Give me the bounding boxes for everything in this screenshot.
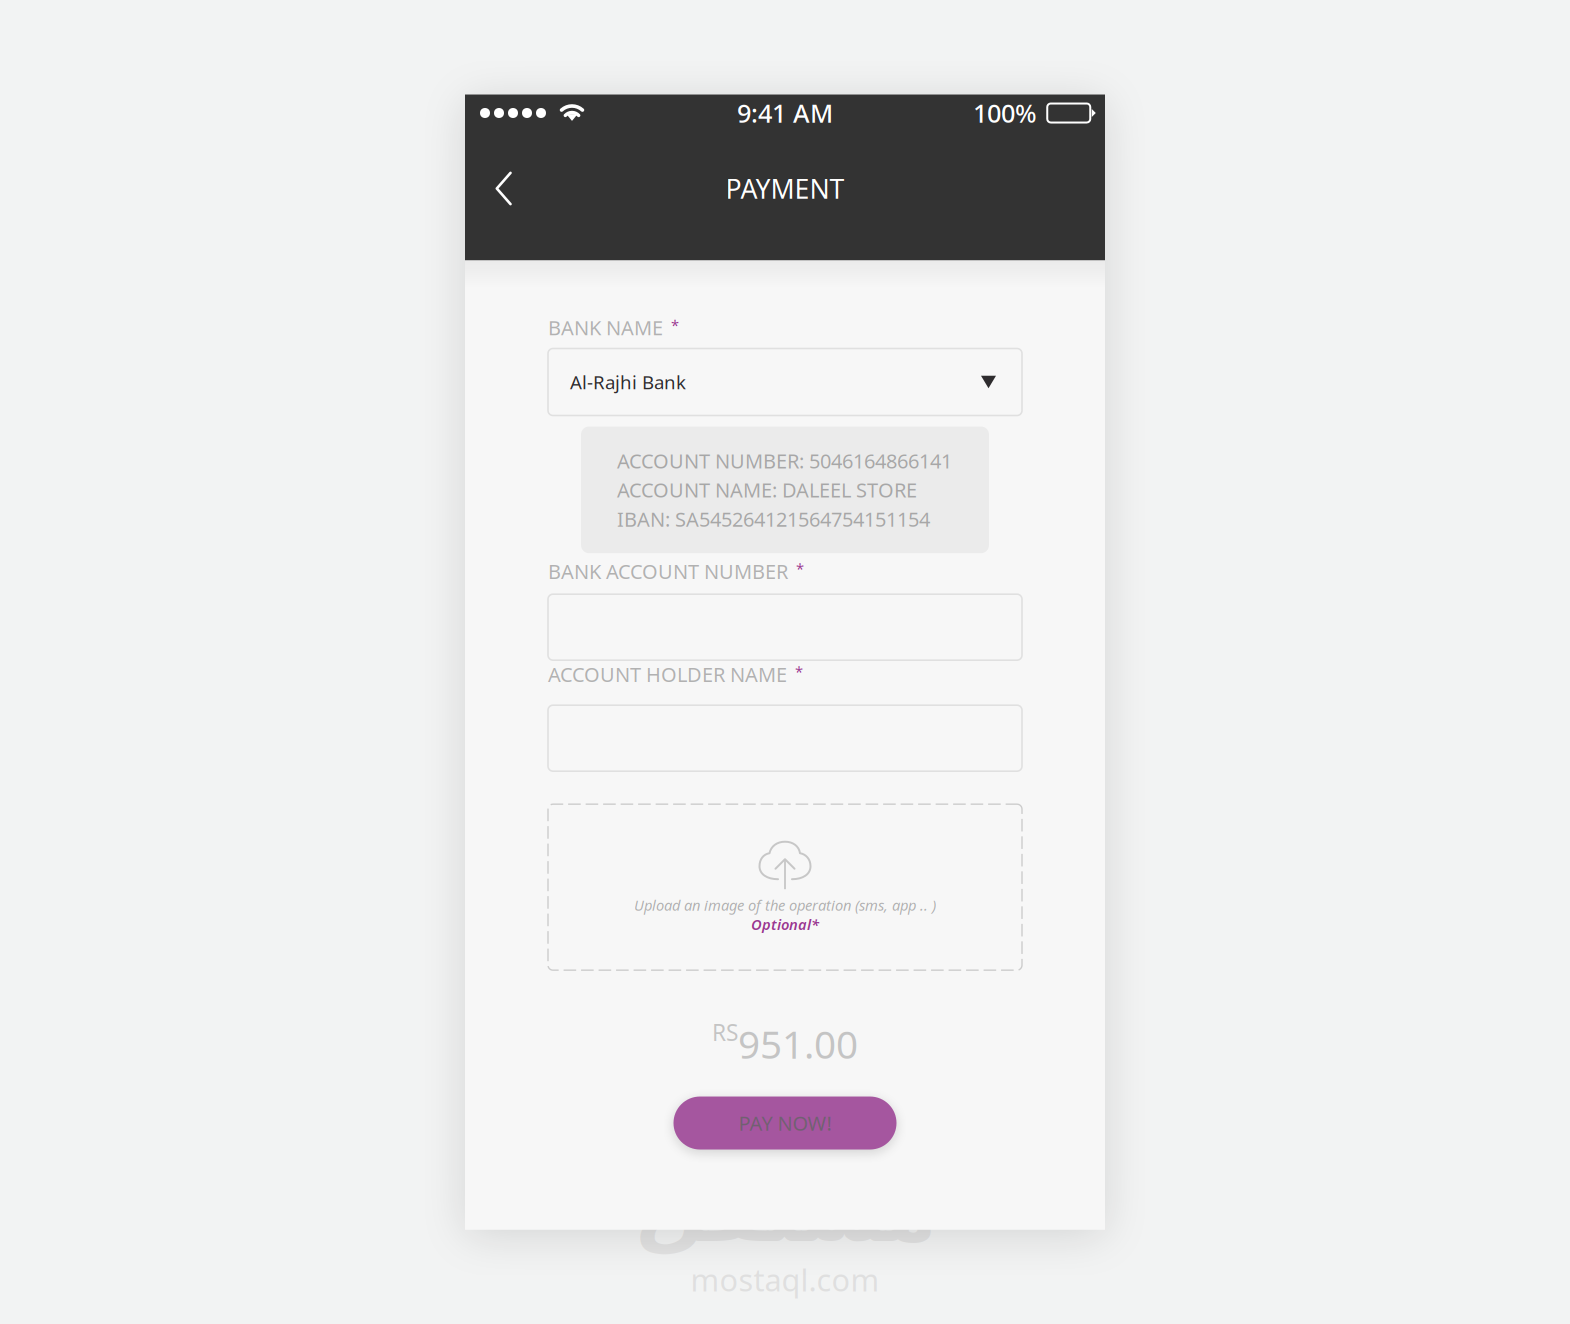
button[interactable]: PAY NOW!	[673, 1096, 896, 1149]
staticText: 951.00	[738, 1018, 858, 1069]
staticText: 9:41 AM	[737, 96, 833, 130]
staticText: Optional*	[751, 915, 819, 934]
staticText: مستقل	[634, 1165, 936, 1259]
staticText: BANK ACCOUNT NUMBER	[548, 558, 788, 584]
staticText: mostaql.com	[690, 1259, 879, 1300]
staticText: *	[795, 662, 803, 681]
staticText: *	[796, 559, 804, 578]
staticText: Al-Rajhi Bank	[570, 370, 686, 394]
staticText: RS	[712, 1017, 738, 1047]
staticText: PAYMENT	[725, 171, 844, 206]
staticText: *	[671, 315, 679, 335]
staticText: PAY NOW!	[738, 1110, 831, 1136]
staticText: ACCOUNT HOLDER NAME	[548, 661, 787, 687]
staticText: 100%	[973, 96, 1037, 130]
staticText: ACCOUNT NUMBER: 5046164866141	[617, 447, 952, 474]
button[interactable]: Al-Rajhi Bank	[548, 348, 1022, 415]
button[interactable]: Upload an image of the operation (sms, a…	[548, 804, 1022, 970]
staticText: IBAN: SA545264121564754151154	[617, 506, 930, 532]
staticText: BANK NAME	[548, 314, 663, 341]
staticText: ACCOUNT NAME: DALEEL STORE	[617, 477, 917, 503]
staticText: Upload an image of the operation (sms, a…	[634, 895, 936, 915]
button[interactable]: Back	[466, 150, 542, 226]
